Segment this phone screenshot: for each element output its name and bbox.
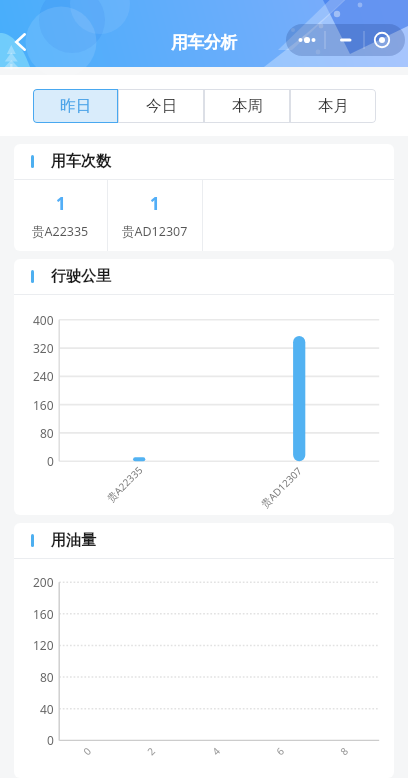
staticText: 本月 [318,96,349,116]
staticText: 0 [47,453,54,469]
button[interactable]: 1 [14,180,107,251]
button[interactable]: 今日 [118,89,204,123]
staticText: 用车次数 [51,152,111,171]
staticText: 1 [150,192,160,215]
button[interactable]: More [286,24,332,56]
staticText: 400 [33,312,54,328]
staticText: 贵A22335 [104,463,145,505]
staticText: 用油量 [51,531,96,550]
staticText: 4 [209,744,223,758]
staticText: 320 [33,340,54,356]
staticText: 本周 [232,96,263,116]
staticText: 0 [47,732,54,748]
staticText: 120 [33,637,54,653]
staticText: 2 [144,744,158,758]
button[interactable]: 本周 [204,89,290,123]
button[interactable]: Back [2,24,38,60]
staticText: 80 [40,425,54,441]
staticText: 1 [56,192,66,215]
staticText: 0 [80,744,94,758]
staticText: 贵AD12307 [122,223,188,240]
button[interactable]: 本月 [290,89,376,123]
staticText: 160 [33,606,54,622]
button[interactable]: Close [366,24,397,56]
button[interactable]: 昨日 [33,89,118,123]
staticText: 6 [273,744,287,758]
staticText: 行驶公里 [51,267,111,286]
staticText: 用车分析 [171,32,237,53]
staticText: 40 [40,701,54,717]
staticText: 昨日 [60,96,91,116]
button[interactable]: 1 [108,180,202,251]
staticText: 贵AD12307 [258,463,305,511]
staticText: 今日 [146,96,177,116]
staticText: 200 [33,574,54,590]
staticText: 240 [33,368,54,384]
staticText: 贵A22335 [32,223,89,240]
staticText: 80 [40,669,54,685]
staticText: 8 [337,744,351,758]
staticText: 160 [33,397,54,413]
